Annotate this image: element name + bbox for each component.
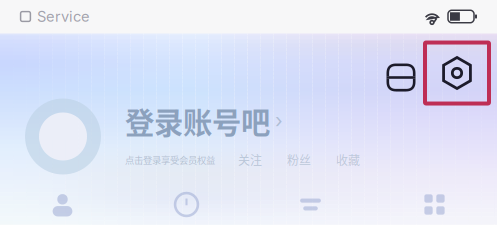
button[interactable]: 收藏: [336, 151, 385, 168]
button[interactable]: History: [124, 183, 248, 225]
staticText: Service: [37, 8, 90, 25]
staticText: 登录账号吧: [125, 99, 270, 142]
staticText: 点击登录享受会员权益: [125, 153, 215, 166]
staticText: 关注: [238, 151, 262, 168]
staticText: ›: [275, 109, 283, 133]
button[interactable]: 粉丝: [287, 151, 336, 168]
button[interactable]: Orders: [0, 183, 124, 225]
staticText: 收藏: [336, 151, 360, 168]
button[interactable]: 关注: [238, 151, 287, 168]
button[interactable]: More: [372, 183, 496, 225]
button[interactable]: Wallet: [248, 183, 372, 225]
button[interactable]: Settings: [425, 42, 489, 103]
button[interactable]: Switch account: [375, 51, 427, 103]
staticText: 粉丝: [287, 151, 311, 168]
button[interactable]: Profile photo: [25, 98, 101, 174]
